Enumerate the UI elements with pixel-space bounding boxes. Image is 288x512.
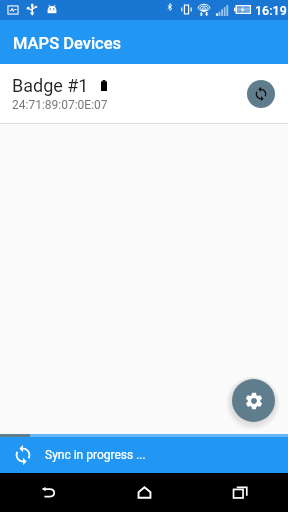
button[interactable]: Badge #1 (0, 64, 288, 124)
button[interactable]: Settings (232, 379, 275, 422)
staticText: Badge #1 (12, 75, 89, 96)
button[interactable]: Sync in progress ... (0, 437, 288, 473)
staticText: 24:71:89:07:0E:07 (12, 98, 108, 112)
staticText: MAPS Devices (13, 34, 122, 53)
button[interactable]: Home (96, 473, 192, 512)
staticText: Sync in progress ... (45, 448, 146, 462)
button[interactable]: Recents (192, 473, 288, 512)
button[interactable]: Sync device (247, 80, 275, 108)
button[interactable]: Back (0, 473, 96, 512)
staticText: 16:19 (255, 3, 287, 18)
